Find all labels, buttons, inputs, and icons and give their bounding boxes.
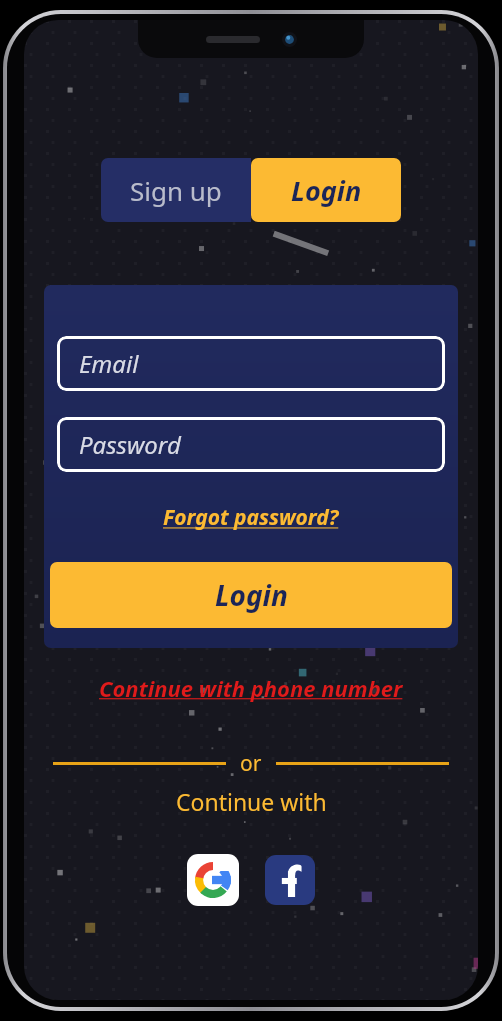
staticText: Continue with — [176, 786, 327, 817]
staticText: Email — [79, 347, 139, 380]
button[interactable]: Login — [50, 562, 452, 628]
button[interactable]: Continue with Facebook — [265, 855, 315, 905]
button[interactable]: Login — [251, 158, 401, 222]
button[interactable]: Continue with phone number — [93, 671, 409, 705]
staticText: Forgot password? — [163, 503, 339, 532]
button[interactable]: Continue with Google — [187, 854, 239, 906]
staticText: Continue with phone number — [99, 673, 403, 703]
button[interactable]: Email — [57, 336, 445, 391]
button[interactable]: Password — [57, 417, 445, 472]
staticText: Password — [79, 428, 181, 461]
staticText: Sign up — [130, 173, 222, 208]
staticText: Login — [215, 576, 288, 614]
button[interactable]: Sign up — [101, 158, 251, 222]
staticText: or — [240, 749, 262, 778]
button[interactable]: Forgot password? — [157, 500, 345, 535]
staticText: Login — [291, 172, 362, 209]
